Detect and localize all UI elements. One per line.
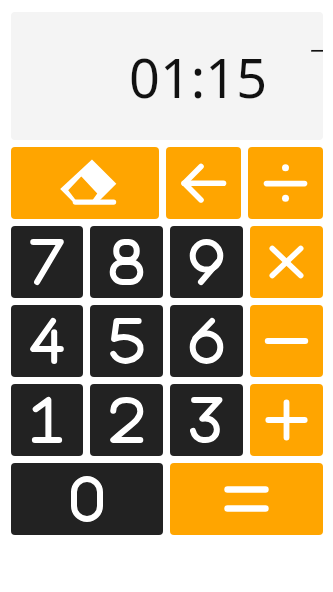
button[interactable] bbox=[170, 226, 243, 298]
button[interactable] bbox=[90, 226, 163, 298]
button[interactable] bbox=[170, 384, 243, 456]
button[interactable] bbox=[11, 226, 83, 298]
button[interactable]: Equals bbox=[170, 463, 323, 535]
button[interactable]: Zero bbox=[11, 463, 163, 535]
button[interactable] bbox=[90, 305, 163, 377]
staticText: 01:15 bbox=[129, 40, 268, 114]
button[interactable] bbox=[11, 305, 83, 377]
button[interactable] bbox=[90, 384, 163, 456]
button[interactable]: Add bbox=[250, 384, 323, 456]
button[interactable] bbox=[11, 384, 83, 456]
button[interactable]: Backspace bbox=[166, 147, 241, 219]
button[interactable]: Clear bbox=[11, 147, 159, 219]
button[interactable]: Subtract bbox=[250, 305, 323, 377]
button[interactable]: Multiply bbox=[250, 226, 323, 298]
button[interactable]: Divide bbox=[248, 147, 323, 219]
staticText: − bbox=[310, 32, 323, 67]
button[interactable] bbox=[170, 305, 243, 377]
